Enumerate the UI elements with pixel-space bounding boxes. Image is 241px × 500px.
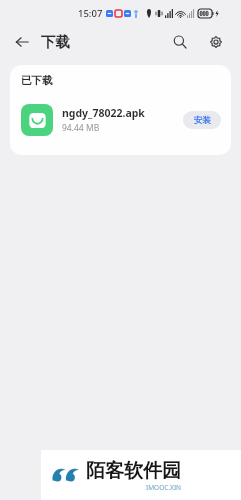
staticText: 陌客软件园: [86, 459, 181, 483]
staticText: 已下载: [21, 74, 53, 87]
staticText: 94.44 MB: [62, 122, 100, 134]
staticText: 下载: [41, 33, 70, 51]
button[interactable]: 安装: [183, 111, 221, 129]
staticText: 安装: [194, 115, 211, 126]
button[interactable]: Search: [167, 29, 193, 55]
staticText: ngdy_78022.apk: [62, 106, 145, 120]
staticText: IMOOC.XIN: [146, 483, 182, 492]
button[interactable]: Settings: [203, 29, 229, 55]
staticText: 15:07: [78, 7, 103, 20]
button[interactable]: Back: [8, 28, 36, 56]
button[interactable]: ngdy_78022.apk: [10, 96, 231, 144]
